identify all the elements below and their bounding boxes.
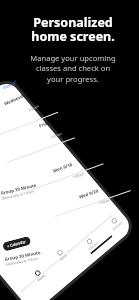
button[interactable]: Account <box>107 215 124 231</box>
button[interactable]: Mon 9/18 <box>52 161 74 174</box>
button[interactable]: Wed 9/20 <box>78 187 100 200</box>
staticText: View all <box>2 79 18 91</box>
button[interactable]: Group 30 Minute <box>4 249 42 267</box>
staticText: Wednesday at 7:00am <box>2 189 36 201</box>
staticText: Group 30 Minute <box>4 249 41 262</box>
staticText: Manage your upcoming classes and check o… <box>30 53 116 85</box>
button[interactable]: Home <box>32 268 47 282</box>
staticText: 7:00am <box>27 103 40 113</box>
staticText: Book <box>59 253 68 261</box>
staticText: Wednesday at 7:00am <box>5 256 39 267</box>
staticText: Personalized home screen. <box>31 14 115 44</box>
staticText: Wednesday <box>3 90 29 106</box>
staticText: 7:00am <box>98 197 111 206</box>
staticText: Group 30 Minute <box>0 182 37 196</box>
staticText: Wed 9/20 <box>78 187 100 200</box>
button[interactable]: 7:00am <box>98 197 111 206</box>
button[interactable]: 7:00am <box>50 131 63 140</box>
button[interactable]: Friday <box>38 118 53 129</box>
button[interactable]: Wednesday <box>3 90 29 106</box>
button[interactable]: Classes <box>83 235 99 251</box>
staticText: Friday <box>38 118 53 129</box>
button[interactable]: + Calendar <box>2 236 31 252</box>
button[interactable]: Group 30 Minute <box>0 182 38 201</box>
button[interactable]: 7:00am <box>27 103 40 113</box>
button[interactable]: 7:00am <box>72 171 85 180</box>
staticText: Classes <box>87 241 99 251</box>
button[interactable]: Book <box>55 248 68 261</box>
staticText: + Calendar <box>6 239 27 249</box>
staticText: Mon 9/18 <box>52 161 74 174</box>
staticText: 7:00am <box>72 171 85 180</box>
staticText: 7:00am <box>50 131 63 140</box>
staticText: Account <box>111 220 124 231</box>
button[interactable]: View all <box>2 79 18 91</box>
staticText: Home <box>36 273 47 282</box>
